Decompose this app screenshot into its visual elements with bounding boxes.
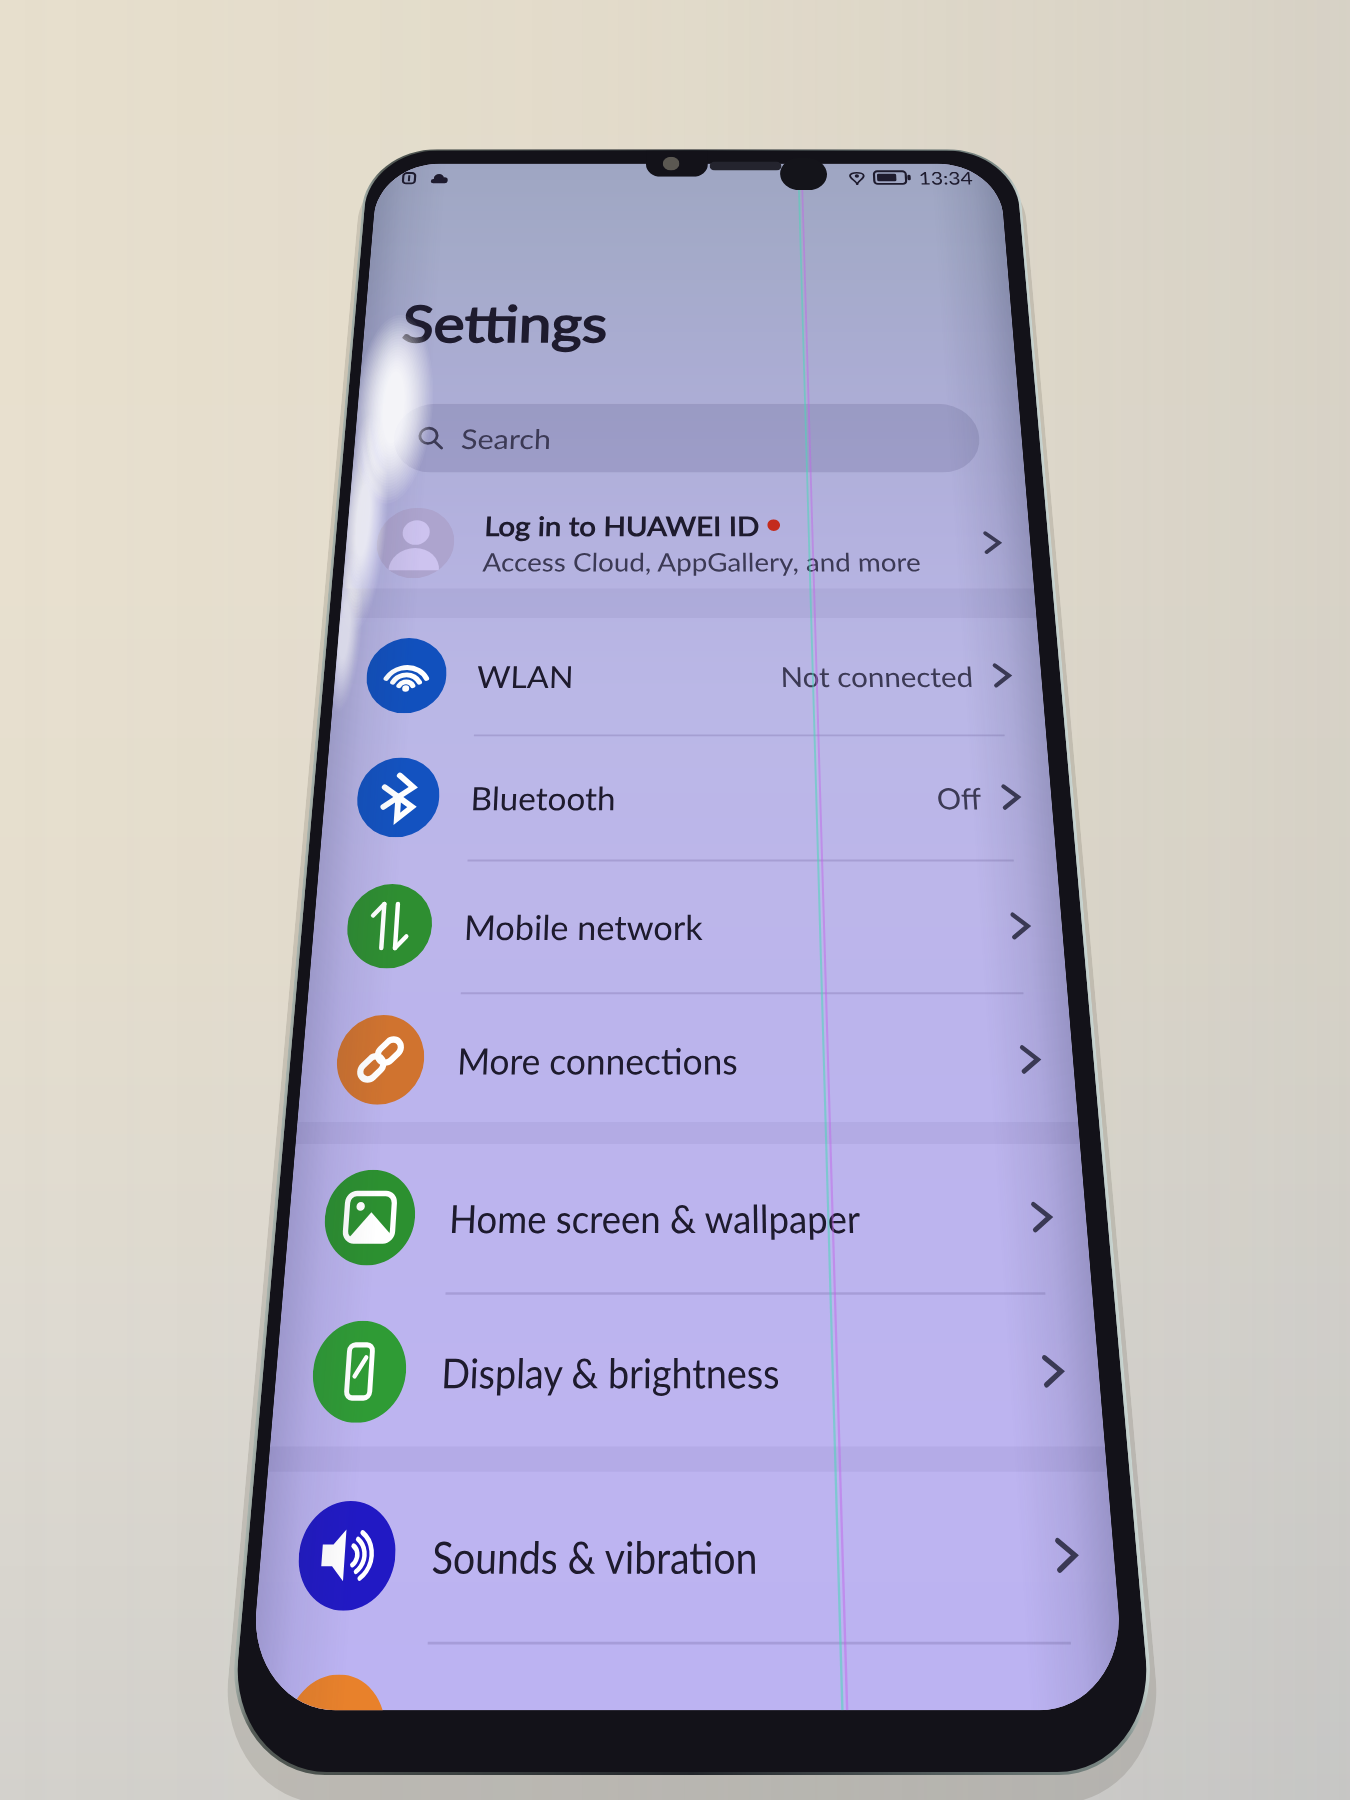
staticText: WLAN bbox=[476, 658, 574, 694]
other: Wi-Fi bbox=[364, 638, 449, 713]
staticText: Log in to HUAWEI ID bbox=[484, 509, 760, 541]
other: Bluetooth bbox=[354, 758, 442, 837]
button[interactable]: Sounds bbox=[254, 1472, 1121, 1642]
button[interactable]: Display bbox=[270, 1295, 1105, 1450]
button[interactable]: Bluetooth bbox=[320, 736, 1056, 860]
staticText: Mobile network bbox=[463, 906, 703, 947]
other: Notifications bbox=[287, 1674, 388, 1710]
staticText: Search bbox=[460, 422, 552, 455]
other: Mobile network bbox=[344, 884, 434, 968]
other: Home screen bbox=[321, 1170, 418, 1265]
button[interactable]: Notifications bbox=[248, 1644, 1127, 1710]
button[interactable]: Mobile network bbox=[308, 861, 1067, 992]
other: Display bbox=[309, 1321, 409, 1423]
button[interactable]: Home screen bbox=[283, 1144, 1092, 1292]
other: Sounds bbox=[295, 1501, 399, 1611]
staticText: Settings bbox=[400, 292, 608, 353]
staticText: Home screen & wallpaper bbox=[448, 1194, 861, 1241]
staticText: Sounds & vibration bbox=[431, 1529, 758, 1583]
staticText: 13:34 bbox=[918, 167, 974, 188]
staticText: Access Cloud, AppGallery, and more bbox=[482, 546, 921, 576]
staticText: More connections bbox=[456, 1038, 738, 1082]
button[interactable]: Wi-Fi bbox=[330, 618, 1046, 734]
staticText: Display & brightness bbox=[440, 1347, 780, 1397]
button[interactable]: Search settings bbox=[391, 404, 982, 472]
staticText: Bluetooth bbox=[470, 778, 616, 817]
staticText: Not connected bbox=[780, 659, 975, 692]
button[interactable]: More connections bbox=[297, 994, 1078, 1126]
staticText: Off bbox=[936, 780, 983, 815]
other: More connections bbox=[334, 1015, 427, 1105]
button[interactable]: Log in to HUAWEI ID bbox=[342, 496, 1034, 590]
